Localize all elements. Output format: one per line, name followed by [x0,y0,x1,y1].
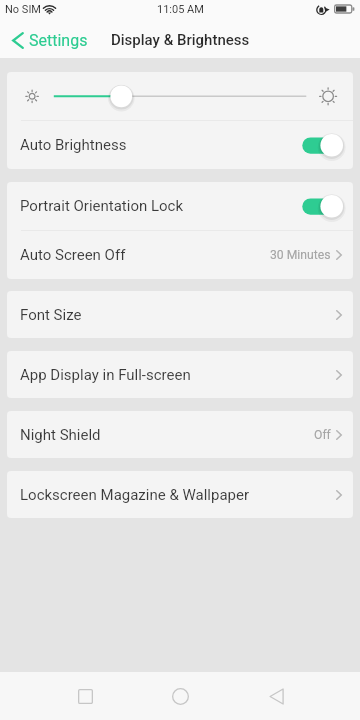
button[interactable]: App Display in Full-screen [7,351,353,398]
staticText: Portrait Orientation Lock [20,197,184,215]
staticText: Settings [29,31,88,50]
staticText: No SIM [5,3,41,16]
button[interactable]: Recent apps [37,672,133,720]
staticText: 30 Minutes [270,248,331,262]
staticText: 11:05 AM [157,3,204,16]
button[interactable]: Lockscreen Magazine & Wallpaper [7,471,353,518]
staticText: Display & Brightness [111,31,250,49]
staticText: Auto Brightness [20,136,127,154]
button[interactable]: Brightness [7,72,353,120]
button[interactable]: Font Size [7,291,353,338]
button[interactable]: Back [228,672,325,720]
button[interactable]: On [299,193,342,219]
button[interactable]: Settings [0,22,96,58]
staticText: Lockscreen Magazine & Wallpaper [20,486,250,504]
button[interactable]: Auto Brightness [7,121,353,169]
button[interactable]: Night Shield [7,411,353,458]
button[interactable]: Auto Screen Off [7,231,353,279]
staticText: App Display in Full-screen [20,366,191,384]
staticText: Off [314,428,331,442]
staticText: Font Size [20,306,82,324]
button[interactable]: On [299,132,342,158]
staticText: Night Shield [20,426,101,444]
button[interactable]: Home [133,672,228,720]
staticText: Auto Screen Off [20,246,126,264]
button[interactable]: Portrait Orientation Lock [7,182,353,230]
